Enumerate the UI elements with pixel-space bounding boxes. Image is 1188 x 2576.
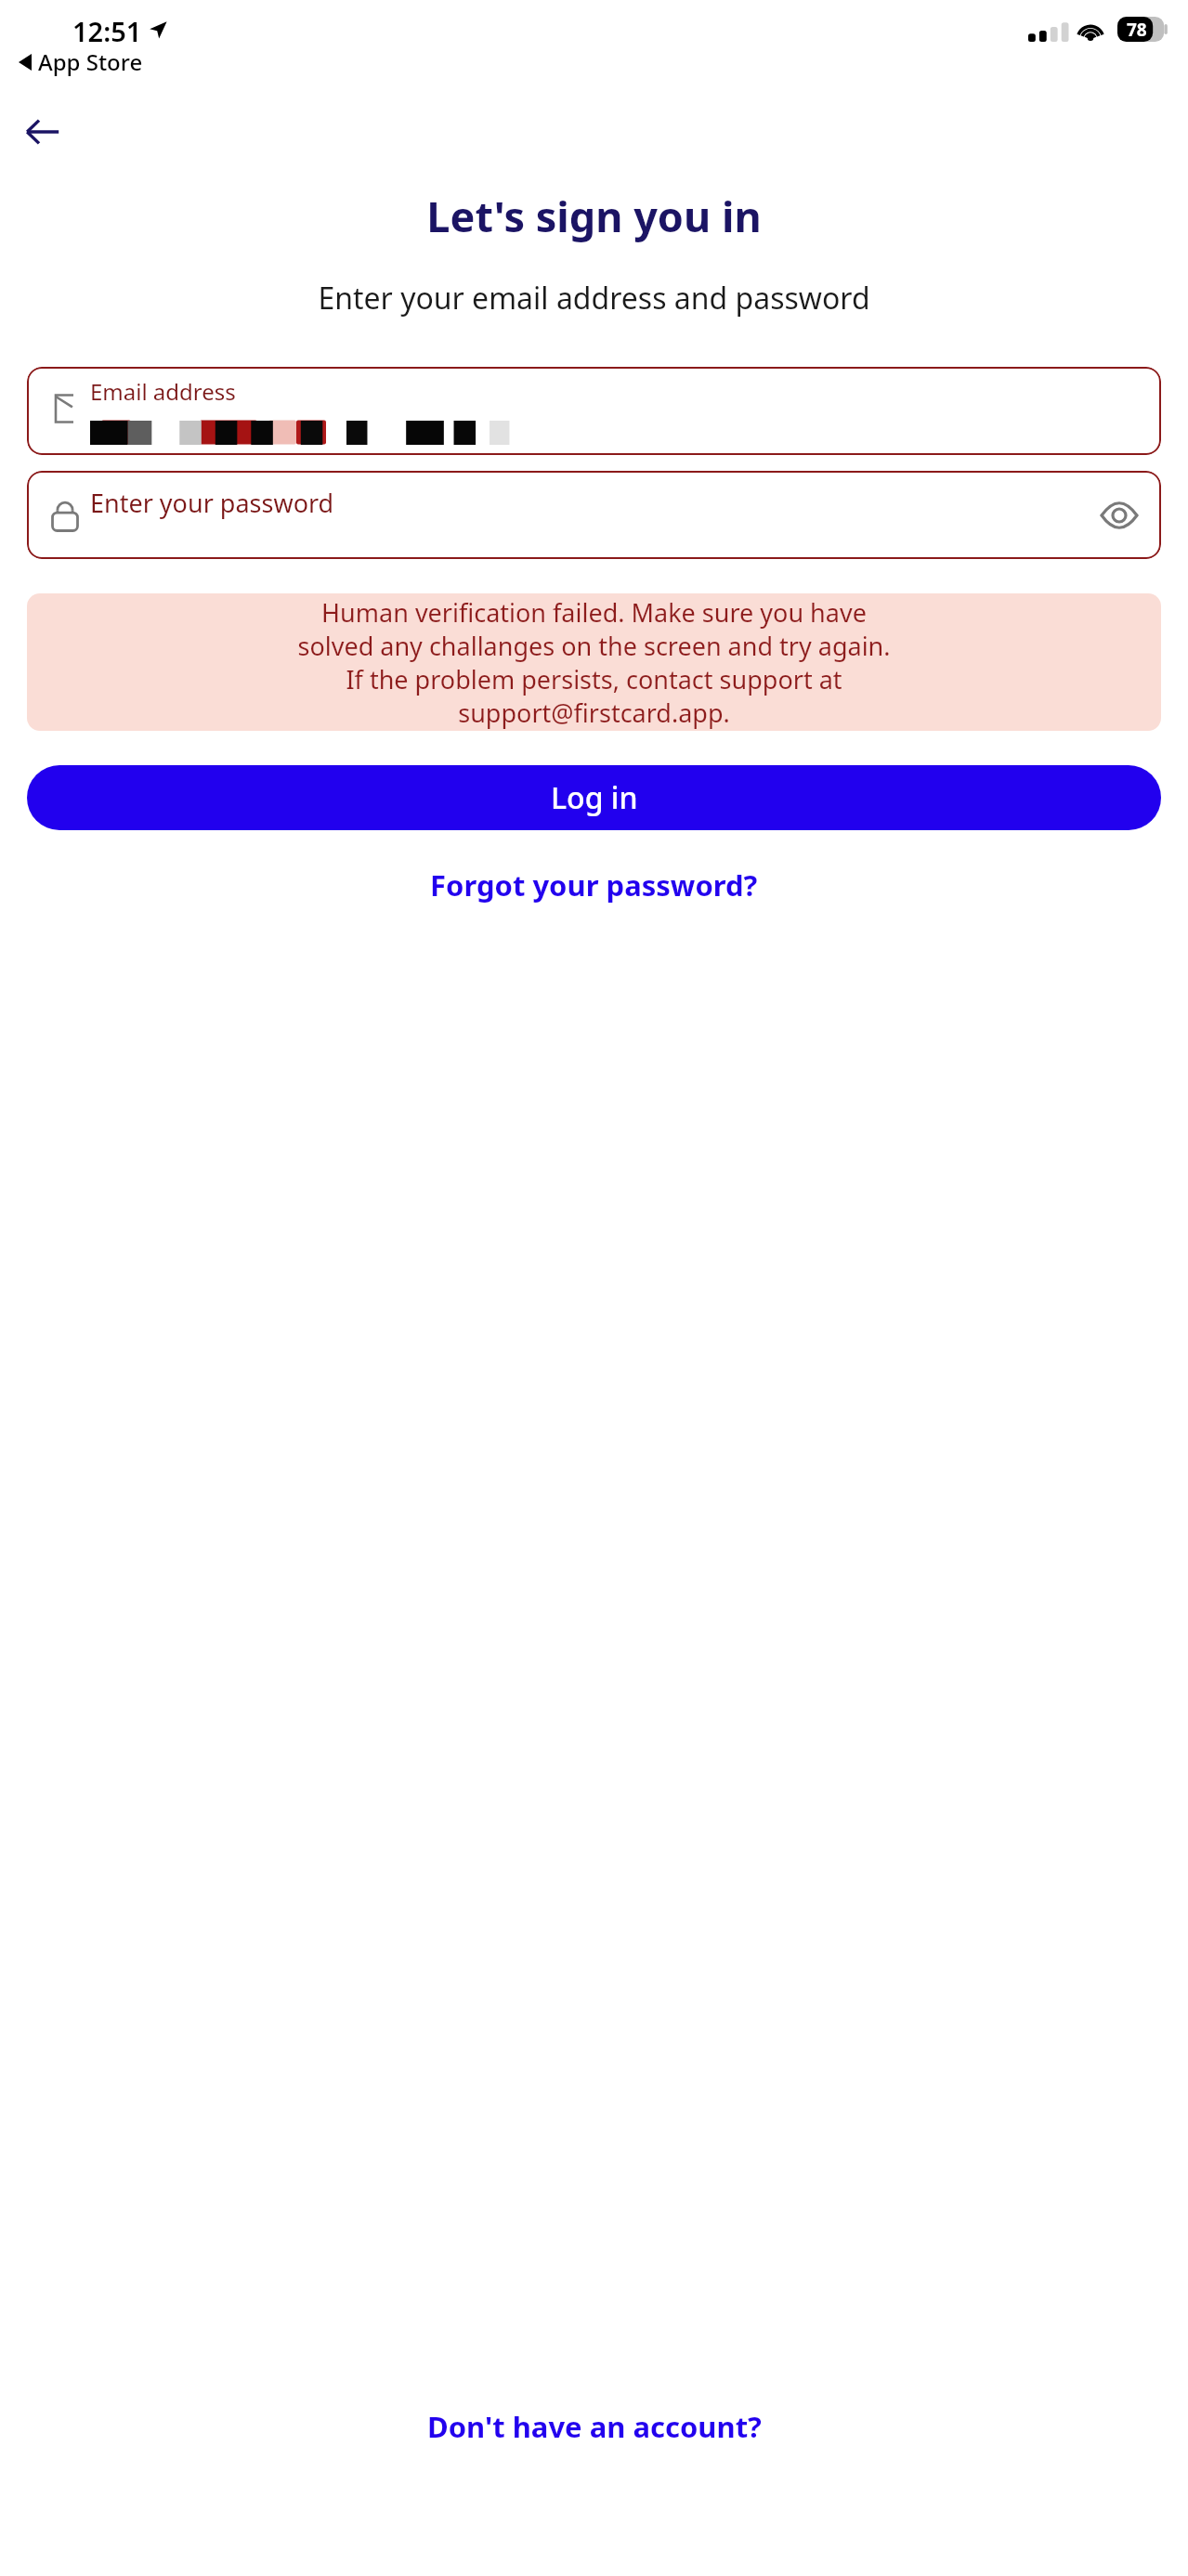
staticText: Enter your email address and password bbox=[318, 278, 870, 319]
button[interactable]: App Store bbox=[19, 46, 143, 77]
button[interactable]: Log in bbox=[27, 765, 1161, 830]
staticText: Email address bbox=[90, 376, 236, 407]
button[interactable]: Don't have an account? bbox=[412, 2396, 777, 2457]
button[interactable]: Enter your password bbox=[27, 471, 1161, 559]
staticText: Don't have an account? bbox=[427, 2407, 762, 2446]
staticText: 78 bbox=[1127, 18, 1147, 42]
staticText: 12:51 bbox=[72, 13, 142, 49]
staticText: Human verification failed. Make sure you… bbox=[297, 595, 891, 730]
staticText: App Store bbox=[38, 46, 143, 77]
staticText: Forgot your password? bbox=[430, 865, 758, 904]
button[interactable]: Show password bbox=[1090, 487, 1148, 544]
button[interactable]: Forgot your password? bbox=[415, 852, 773, 917]
staticText: Let's sign you in bbox=[426, 188, 762, 244]
button[interactable]: Back bbox=[9, 98, 76, 165]
button[interactable]: Email address bbox=[27, 367, 1161, 455]
staticText: Log in bbox=[551, 777, 638, 818]
staticText: Enter your password bbox=[90, 486, 334, 520]
